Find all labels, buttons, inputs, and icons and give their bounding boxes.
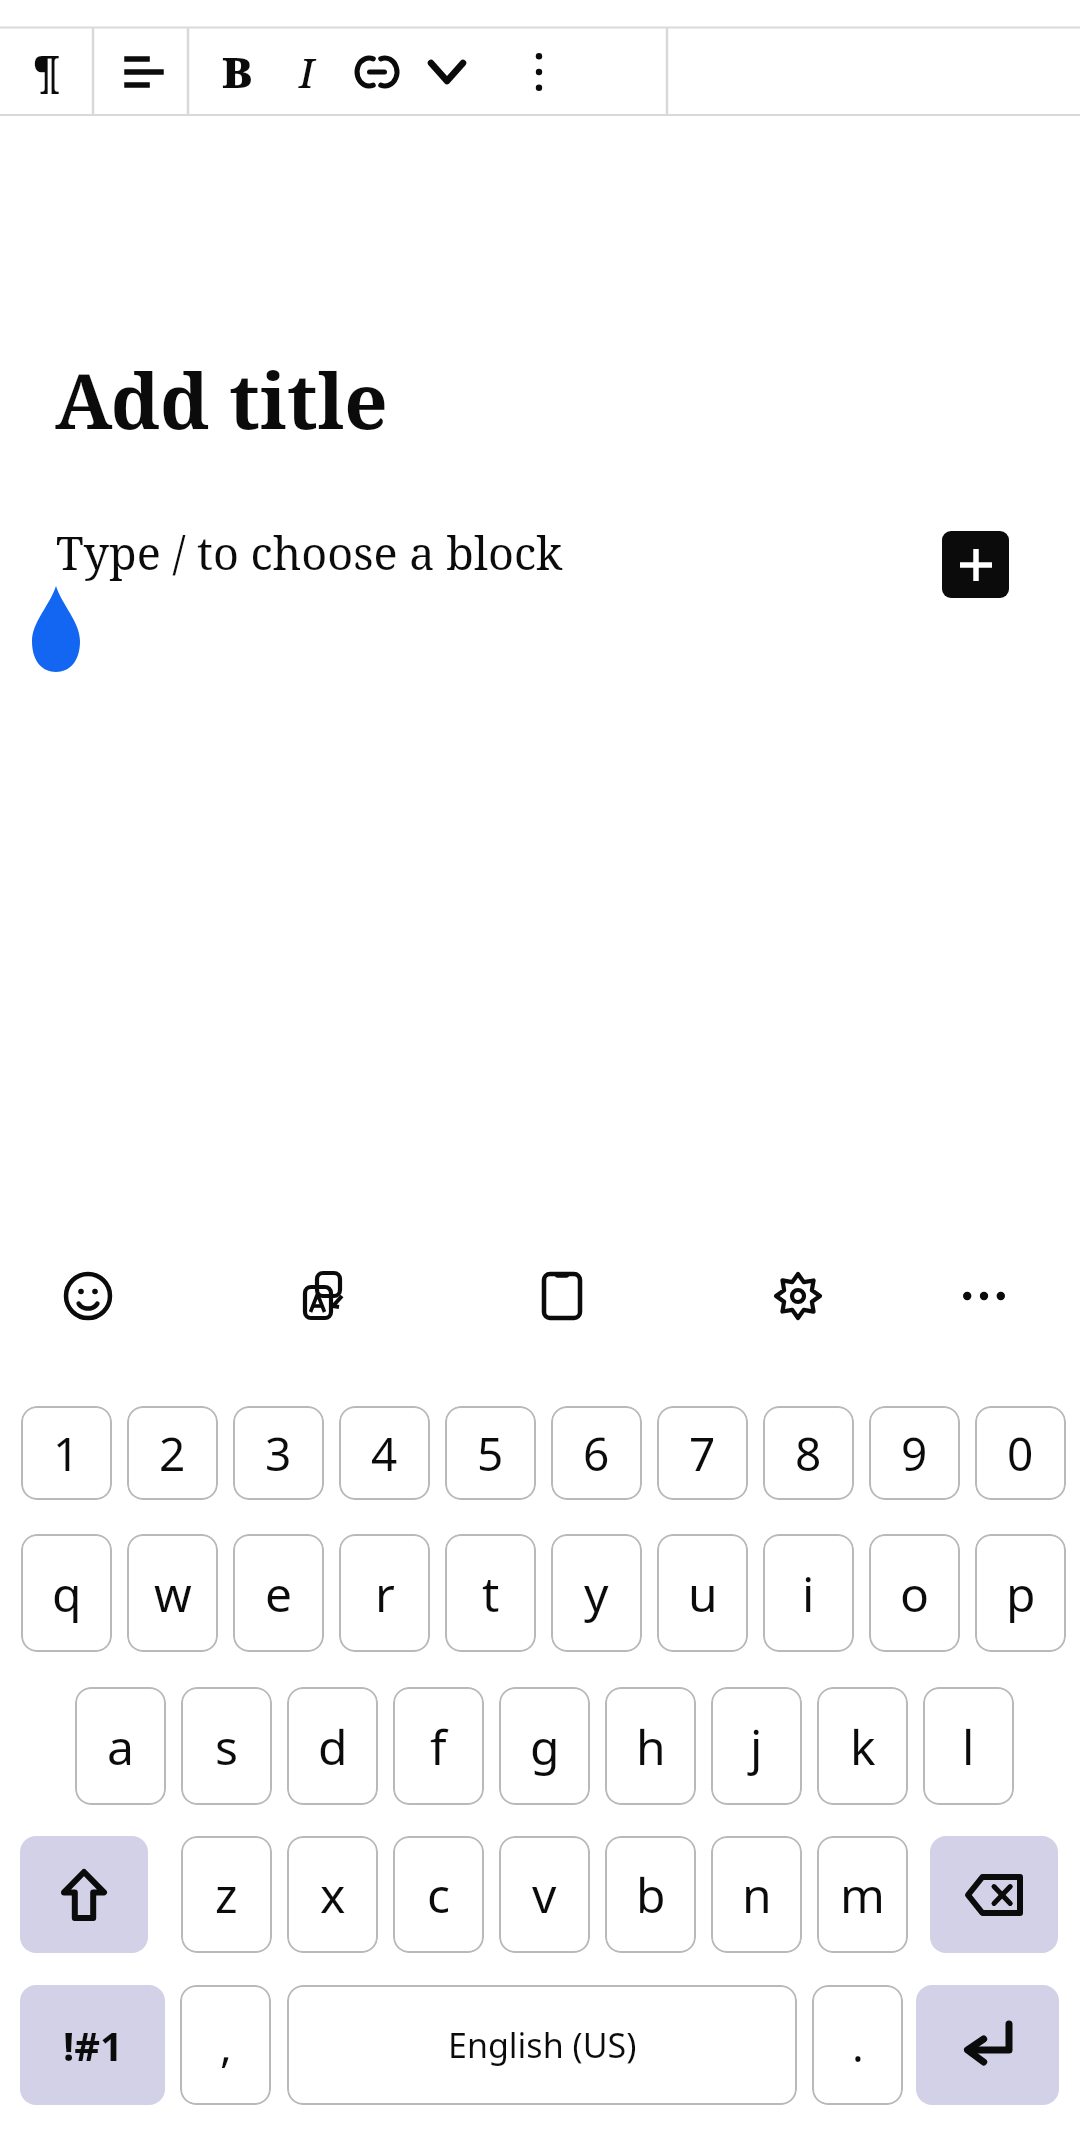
button[interactable]: Emoji: [44, 1252, 132, 1340]
button[interactable]: Align: [103, 27, 181, 116]
button[interactable]: 9: [869, 1406, 960, 1500]
staticText: 9: [901, 1422, 928, 1485]
button[interactable]: a: [75, 1687, 166, 1805]
button[interactable]: Insert link: [338, 27, 416, 116]
button[interactable]: h: [605, 1687, 696, 1805]
staticText: 4: [371, 1422, 398, 1485]
button[interactable]: Bold: [198, 27, 276, 116]
staticText: w: [154, 1561, 192, 1626]
staticText: z: [215, 1862, 238, 1927]
button[interactable]: q: [21, 1534, 112, 1652]
staticText: l: [962, 1714, 975, 1779]
button[interactable]: More formatting: [408, 27, 486, 116]
staticText: i: [802, 1561, 815, 1626]
button[interactable]: v: [499, 1836, 590, 1953]
button[interactable]: Options: [500, 27, 578, 116]
button[interactable]: 1: [21, 1406, 112, 1500]
button[interactable]: Settings: [754, 1252, 842, 1340]
button[interactable]: b: [605, 1836, 696, 1953]
button[interactable]: 2: [127, 1406, 218, 1500]
button[interactable]: p: [975, 1534, 1066, 1652]
button[interactable]: Translate: [283, 1252, 371, 1340]
button[interactable]: Add block: [942, 531, 1009, 598]
staticText: 6: [583, 1422, 610, 1485]
staticText: 5: [477, 1422, 504, 1485]
button[interactable]: k: [817, 1687, 908, 1805]
staticText: p: [1006, 1561, 1036, 1626]
button[interactable]: English (US): [287, 1985, 797, 2105]
button[interactable]: Backspace: [930, 1836, 1058, 1953]
button[interactable]: 5: [445, 1406, 536, 1500]
staticText: k: [850, 1714, 876, 1779]
button[interactable]: l: [923, 1687, 1014, 1805]
staticText: h: [636, 1714, 666, 1779]
button[interactable]: j: [711, 1687, 802, 1805]
staticText: I: [299, 45, 315, 99]
button[interactable]: Add title: [55, 348, 388, 452]
staticText: 1: [53, 1422, 80, 1485]
button[interactable]: n: [711, 1836, 802, 1953]
button[interactable]: Enter: [916, 1985, 1059, 2105]
button[interactable]: z: [181, 1836, 272, 1953]
button[interactable]: x: [287, 1836, 378, 1953]
button[interactable]: c: [393, 1836, 484, 1953]
button[interactable]: ,: [180, 1985, 271, 2105]
staticText: ¶: [33, 42, 61, 102]
staticText: d: [318, 1714, 348, 1779]
button[interactable]: f: [393, 1687, 484, 1805]
staticText: n: [742, 1862, 772, 1927]
button[interactable]: s: [181, 1687, 272, 1805]
staticText: g: [530, 1714, 560, 1779]
button[interactable]: Shift: [20, 1836, 148, 1953]
button[interactable]: 7: [657, 1406, 748, 1500]
staticText: v: [532, 1862, 557, 1927]
staticText: s: [215, 1714, 238, 1779]
staticText: x: [320, 1862, 346, 1927]
staticText: 2: [159, 1422, 186, 1485]
button[interactable]: g: [499, 1687, 590, 1805]
button[interactable]: t: [445, 1534, 536, 1652]
button[interactable]: Italic: [272, 27, 342, 116]
staticText: !#1: [63, 2018, 123, 2072]
staticText: c: [427, 1862, 451, 1927]
staticText: f: [430, 1714, 447, 1779]
staticText: ,: [220, 2015, 232, 2075]
button[interactable]: y: [551, 1534, 642, 1652]
button[interactable]: i: [763, 1534, 854, 1652]
button[interactable]: Clipboard: [518, 1252, 606, 1340]
button[interactable]: .: [812, 1985, 903, 2105]
button[interactable]: u: [657, 1534, 748, 1652]
staticText: j: [750, 1714, 763, 1779]
button[interactable]: 3: [233, 1406, 324, 1500]
staticText: e: [265, 1561, 293, 1626]
button[interactable]: e: [233, 1534, 324, 1652]
staticText: 8: [795, 1422, 822, 1485]
button[interactable]: 4: [339, 1406, 430, 1500]
button[interactable]: w: [127, 1534, 218, 1652]
button[interactable]: r: [339, 1534, 430, 1652]
button[interactable]: 6: [551, 1406, 642, 1500]
staticText: .: [852, 2015, 864, 2075]
button[interactable]: d: [287, 1687, 378, 1805]
button[interactable]: Paragraph block: [8, 27, 86, 116]
staticText: u: [688, 1561, 718, 1626]
button[interactable]: 8: [763, 1406, 854, 1500]
staticText: r: [375, 1561, 395, 1626]
staticText: o: [900, 1561, 930, 1626]
button[interactable]: m: [817, 1836, 908, 1953]
staticText: 3: [265, 1422, 292, 1485]
button[interactable]: !#1: [20, 1985, 165, 2105]
staticText: a: [107, 1714, 134, 1779]
staticText: m: [840, 1862, 885, 1927]
button[interactable]: Type / to choose a block: [56, 522, 563, 583]
staticText: 7: [689, 1422, 716, 1485]
staticText: B: [222, 43, 253, 100]
button[interactable]: o: [869, 1534, 960, 1652]
staticText: English (US): [448, 2022, 637, 2068]
staticText: y: [584, 1561, 609, 1626]
button[interactable]: 0: [975, 1406, 1066, 1500]
staticText: 0: [1007, 1422, 1034, 1485]
staticText: b: [636, 1862, 666, 1927]
staticText: q: [52, 1561, 82, 1626]
button[interactable]: More: [940, 1252, 1028, 1340]
